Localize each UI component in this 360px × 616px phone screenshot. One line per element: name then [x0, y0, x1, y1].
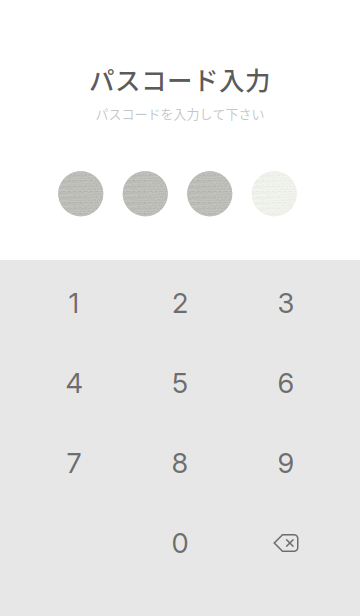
button[interactable]: 9 — [233, 423, 339, 503]
button[interactable]: 4 — [21, 343, 127, 423]
staticText: パスコードを入力して下さい — [95, 104, 264, 123]
button[interactable]: 8 — [127, 423, 233, 503]
staticText: 5 — [172, 366, 188, 400]
staticText: 8 — [171, 446, 188, 480]
staticText: 9 — [277, 446, 294, 480]
staticText: 4 — [65, 366, 82, 400]
button[interactable]: 3 — [233, 263, 339, 343]
staticText: 0 — [171, 526, 188, 560]
staticText: 3 — [277, 286, 294, 320]
button[interactable]: 5 — [127, 343, 233, 423]
button[interactable]: 6 — [233, 343, 339, 423]
button[interactable]: 2 — [127, 263, 233, 343]
staticText: 7 — [66, 446, 81, 480]
staticText: 1 — [68, 286, 79, 320]
button[interactable]: 1 — [21, 263, 127, 343]
button[interactable]: Delete — [233, 503, 339, 583]
staticText: 2 — [172, 286, 188, 320]
button[interactable]: 0 — [127, 503, 233, 583]
staticText: 6 — [277, 366, 294, 400]
button[interactable]: 7 — [21, 423, 127, 503]
staticText: パスコード入力 — [89, 60, 271, 97]
